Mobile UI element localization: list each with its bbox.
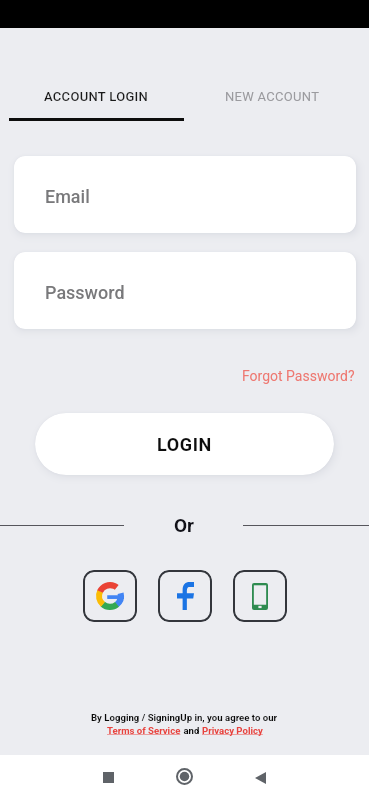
staticText: Email (45, 186, 90, 207)
staticText: LOGIN (157, 434, 212, 455)
staticText: ACCOUNT LOGIN (44, 89, 149, 104)
button[interactable]: Recents (80, 755, 136, 800)
staticText: and (181, 725, 202, 736)
button[interactable]: Terms of Service (107, 725, 181, 736)
button[interactable]: Back (232, 755, 288, 800)
button[interactable]: LOGIN (35, 413, 334, 475)
button[interactable]: Sign in with Facebook (158, 570, 212, 622)
button[interactable]: Password (14, 252, 356, 329)
staticText: Password (45, 282, 125, 303)
button[interactable]: NEW ACCOUNT (184, 74, 360, 121)
button[interactable]: Email (14, 156, 356, 233)
button[interactable]: Sign in with Google (83, 570, 137, 622)
button[interactable]: Forgot Password? (232, 363, 365, 389)
button[interactable]: Home (156, 755, 212, 800)
button[interactable]: Sign in with phone (233, 570, 287, 622)
staticText: Or (174, 514, 195, 536)
staticText: Forgot Password? (242, 368, 355, 384)
button[interactable]: Privacy Policy (202, 725, 263, 736)
staticText: NEW ACCOUNT (225, 89, 320, 104)
staticText: By Logging / SigningUp in, you agree to … (91, 712, 278, 723)
button[interactable]: ACCOUNT LOGIN (9, 74, 184, 121)
